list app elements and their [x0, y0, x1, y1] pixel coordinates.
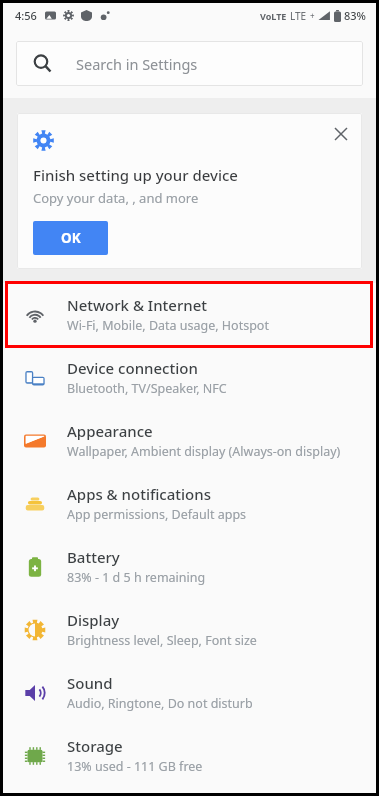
button[interactable]: Apps & notifications: [3, 472, 376, 535]
staticText: App permissions, Default apps: [67, 506, 247, 523]
staticText: Copy your data, , and more: [33, 189, 199, 207]
staticText: +: [310, 10, 315, 21]
button[interactable]: Display: [3, 598, 376, 661]
button[interactable]: OK: [33, 221, 108, 255]
button[interactable]: Appearance: [3, 409, 376, 472]
staticText: Battery: [67, 547, 120, 567]
staticText: Bluetooth, TV/Speaker, NFC: [67, 380, 227, 397]
staticText: 83% - 1 d 5 h remaining: [67, 569, 206, 586]
staticText: Wallpaper, Ambient display (Always-on di…: [67, 443, 341, 460]
staticText: VoLTE: [260, 10, 287, 22]
staticText: Appearance: [67, 421, 153, 441]
staticText: 83%: [344, 8, 366, 23]
button[interactable]: Network & Internet: [3, 283, 376, 346]
staticText: Wi-Fi, Mobile, Data usage, Hotspot: [67, 317, 269, 334]
button[interactable]: Storage: [3, 724, 376, 787]
staticText: Apps & notifications: [67, 484, 211, 504]
staticText: Sound: [67, 673, 113, 693]
button[interactable]: Sound: [3, 661, 376, 724]
staticText: 13% used - 111 GB free: [67, 758, 203, 775]
button[interactable]: Battery: [3, 535, 376, 598]
staticText: OK: [61, 229, 81, 247]
staticText: Device connection: [67, 358, 198, 378]
staticText: Audio, Ringtone, Do not disturb: [67, 695, 253, 712]
staticText: Storage: [67, 736, 123, 756]
button[interactable]: Device connection: [3, 346, 376, 409]
button[interactable]: Dismiss: [328, 121, 354, 147]
staticText: Brightness level, Sleep, Font size: [67, 632, 257, 649]
button[interactable]: Search in Settings: [16, 41, 363, 86]
staticText: Network & Internet: [67, 295, 208, 315]
staticText: Search in Settings: [76, 54, 198, 74]
staticText: Display: [67, 610, 120, 630]
staticText: 4:56: [15, 8, 37, 23]
staticText: Finish setting up your device: [33, 165, 238, 185]
staticText: LTE: [290, 9, 307, 23]
